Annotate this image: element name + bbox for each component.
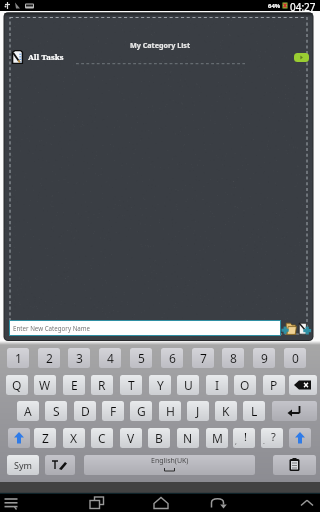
button[interactable]: E <box>63 375 85 395</box>
staticText: Enter New Category Name <box>13 324 91 332</box>
button[interactable]: V <box>120 428 142 448</box>
staticText: 4 <box>107 350 114 366</box>
button[interactable]: Shift <box>289 428 311 448</box>
staticText: 3 <box>76 350 83 366</box>
button[interactable]: O <box>234 375 256 395</box>
staticText: C <box>98 430 106 446</box>
button[interactable]: G <box>130 401 152 421</box>
staticText: , <box>235 437 237 447</box>
button[interactable]: S <box>45 401 67 421</box>
staticText: 04:27 <box>290 0 316 11</box>
button[interactable]: Expand <box>291 494 320 512</box>
staticText: P <box>270 377 278 393</box>
button[interactable]: 3 <box>68 348 90 368</box>
staticText: H <box>166 403 175 419</box>
staticText: S <box>53 403 60 419</box>
staticText: Q <box>12 377 22 393</box>
staticText: A <box>24 403 32 419</box>
staticText: F <box>110 403 117 419</box>
staticText: 6 <box>169 350 176 366</box>
button[interactable]: Expand <box>294 53 309 62</box>
button[interactable]: ! <box>233 428 255 448</box>
button[interactable]: Enter <box>272 401 317 421</box>
staticText: R <box>98 377 106 393</box>
button[interactable]: A <box>17 401 39 421</box>
button[interactable]: C <box>91 428 113 448</box>
button[interactable]: Clipboard <box>273 455 316 475</box>
staticText: 1 <box>15 350 22 366</box>
button[interactable]: L <box>243 401 265 421</box>
staticText: 64% <box>268 2 281 10</box>
button[interactable]: R <box>91 375 113 395</box>
button[interactable]: W <box>34 375 56 395</box>
button[interactable]: ? <box>261 428 283 448</box>
button[interactable]: Enter New Category Name <box>10 321 280 335</box>
staticText: D <box>81 403 90 419</box>
staticText: V <box>127 430 135 446</box>
staticText: X <box>70 430 78 446</box>
button[interactable]: 2 <box>38 348 60 368</box>
button[interactable]: M <box>206 428 228 448</box>
staticText: 5 <box>138 350 145 366</box>
button[interactable]: Sym <box>7 455 39 475</box>
button[interactable]: Z <box>34 428 56 448</box>
staticText: 2 <box>46 350 53 366</box>
button[interactable]: Input method <box>45 455 75 475</box>
staticText: J <box>196 403 200 419</box>
staticText: My Category List <box>0 40 320 50</box>
staticText: B <box>155 430 163 446</box>
staticText: G <box>137 403 146 419</box>
button[interactable]: Backspace <box>289 375 317 395</box>
staticText: U <box>184 377 193 393</box>
staticText: . <box>263 437 265 447</box>
button[interactable]: K <box>215 401 237 421</box>
button[interactable]: 4 <box>99 348 121 368</box>
button[interactable]: U <box>177 375 199 395</box>
staticText: 0 <box>292 350 299 366</box>
button[interactable]: 9 <box>253 348 275 368</box>
button[interactable]: N <box>177 428 199 448</box>
button[interactable]: Shift <box>8 428 30 448</box>
button[interactable]: New folder <box>283 319 298 336</box>
button[interactable]: D <box>74 401 96 421</box>
button[interactable]: P <box>263 375 285 395</box>
button[interactable]: F <box>102 401 124 421</box>
button[interactable]: Menu <box>0 494 27 512</box>
staticText: K <box>222 403 230 419</box>
button[interactable]: All Tasks <box>12 50 64 64</box>
button[interactable]: Recents <box>81 494 113 512</box>
staticText: ! <box>244 429 247 444</box>
button[interactable]: J <box>187 401 209 421</box>
staticText: ? <box>271 429 276 444</box>
button[interactable]: 8 <box>222 348 244 368</box>
button[interactable]: T <box>120 375 142 395</box>
staticText: 9 <box>261 350 268 366</box>
button[interactable]: English(UK) <box>84 455 255 475</box>
staticText: O <box>240 377 250 393</box>
staticText: L <box>251 403 258 419</box>
button[interactable]: X <box>63 428 85 448</box>
staticText: Sym <box>14 459 32 471</box>
button[interactable]: B <box>148 428 170 448</box>
staticText: Z <box>42 430 49 446</box>
button[interactable]: 6 <box>161 348 183 368</box>
staticText: Y <box>157 377 164 393</box>
button[interactable]: Q <box>6 375 28 395</box>
button[interactable]: Y <box>149 375 171 395</box>
button[interactable]: 0 <box>284 348 306 368</box>
staticText: M <box>212 430 223 446</box>
button[interactable]: Home <box>145 494 177 512</box>
staticText: N <box>183 430 193 446</box>
staticText: All Tasks <box>28 52 64 63</box>
button[interactable]: 5 <box>130 348 152 368</box>
button[interactable]: New note <box>297 319 312 336</box>
staticText: W <box>39 377 51 393</box>
staticText: 7 <box>200 350 207 366</box>
button[interactable]: Back <box>201 494 233 512</box>
button[interactable]: 1 <box>7 348 29 368</box>
staticText: I <box>215 377 220 393</box>
staticText: English(UK) <box>151 456 189 466</box>
button[interactable]: H <box>159 401 181 421</box>
button[interactable]: I <box>206 375 228 395</box>
button[interactable]: 7 <box>192 348 214 368</box>
